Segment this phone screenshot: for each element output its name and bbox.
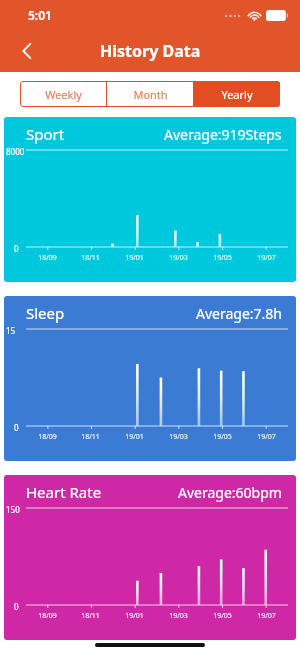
staticText: 0 bbox=[14, 422, 19, 433]
staticText: 19/07 bbox=[257, 253, 276, 263]
button[interactable]: Sport bbox=[4, 117, 296, 282]
staticText: 19/01 bbox=[125, 253, 144, 263]
staticText: Sleep bbox=[26, 303, 65, 323]
staticText: 18/11 bbox=[81, 611, 100, 621]
staticText: History Data bbox=[100, 40, 201, 62]
button[interactable]: Yearly bbox=[194, 81, 280, 107]
staticText: 8000 bbox=[6, 146, 25, 157]
staticText: Yearly bbox=[221, 87, 253, 102]
staticText: 18/09 bbox=[38, 432, 57, 442]
button[interactable]: Sleep bbox=[4, 296, 296, 461]
staticText: 19/07 bbox=[257, 432, 276, 442]
staticText: Month bbox=[133, 87, 168, 102]
staticText: 5:01 bbox=[28, 7, 52, 23]
button[interactable]: Weekly bbox=[20, 81, 106, 107]
staticText: Average:7.8h bbox=[196, 304, 282, 323]
staticText: 19/07 bbox=[257, 611, 276, 621]
staticText: 0 bbox=[14, 243, 19, 254]
staticText: 15 bbox=[6, 325, 16, 336]
staticText: 19/05 bbox=[213, 432, 232, 442]
staticText: 0 bbox=[14, 601, 19, 612]
staticText: Weekly bbox=[45, 87, 82, 102]
staticText: 18/09 bbox=[38, 611, 57, 621]
button[interactable]: Month bbox=[107, 81, 193, 107]
staticText: 150 bbox=[6, 504, 20, 515]
staticText: 18/11 bbox=[81, 432, 100, 442]
staticText: 19/01 bbox=[125, 611, 144, 621]
button[interactable]: Heart Rate bbox=[4, 475, 296, 640]
staticText: 19/03 bbox=[169, 432, 188, 442]
staticText: 19/03 bbox=[169, 611, 188, 621]
staticText: Sport bbox=[26, 124, 65, 144]
staticText: 19/01 bbox=[125, 432, 144, 442]
staticText: 19/03 bbox=[169, 253, 188, 263]
staticText: 19/05 bbox=[213, 611, 232, 621]
staticText: Average:919Steps bbox=[164, 125, 282, 144]
staticText: Heart Rate bbox=[26, 482, 102, 502]
staticText: Average:60bpm bbox=[178, 483, 282, 502]
button[interactable]: Back bbox=[10, 34, 44, 68]
staticText: 19/05 bbox=[213, 253, 232, 263]
staticText: 18/11 bbox=[81, 253, 100, 263]
staticText: 18/09 bbox=[38, 253, 57, 263]
